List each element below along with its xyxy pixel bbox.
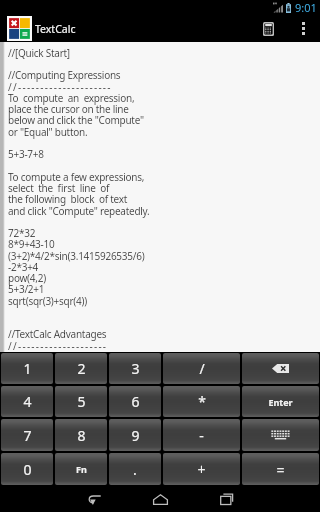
staticText: 1 [23,359,32,378]
button[interactable]: Enter [242,386,319,417]
staticText: select the first line of [8,183,110,194]
button[interactable]: = [242,453,319,485]
staticText: 8 [77,426,86,445]
button[interactable]: . [109,453,161,485]
staticText: To compute an expression, [8,93,135,104]
button[interactable]: 4 [1,386,53,417]
staticText: 5 [77,392,86,411]
staticText: the following block of text [8,194,128,205]
button[interactable]: 5 [55,386,107,417]
staticText: 5+3/2+1 [8,284,45,295]
staticText: = [276,460,285,479]
staticText: Enter [268,396,293,408]
staticText: -2*3+4 [8,262,39,273]
staticText: place the cursor on the line [8,104,129,115]
staticText: 72*32 [8,228,36,239]
button[interactable]: 8 [55,419,107,451]
staticText: TextCalc [35,22,76,36]
staticText: 7 [23,426,32,445]
button[interactable]: More options [290,15,316,42]
button[interactable]: + [163,453,240,485]
staticText: To compute a few expressions, [8,172,145,183]
staticText: below and click the "Compute" [8,115,144,126]
staticText: and click "Compute" repeatedly. [8,206,150,217]
button[interactable]: Recent apps [193,486,259,512]
staticText: * [198,392,206,411]
button[interactable]: 3 [109,353,161,384]
button[interactable]: 9 [109,419,161,451]
button[interactable]: 6 [109,386,161,417]
button[interactable]: Home [127,486,193,512]
staticText: pow(4,2) [8,273,46,284]
staticText: + [197,460,206,479]
staticText: . [133,460,137,479]
staticText: sqrt(sqr(3)+sqr(4)) [8,296,88,307]
staticText: 5+3-7+8 [8,149,44,160]
staticText: Fn [76,463,87,475]
staticText: - [199,426,204,445]
staticText: 9:01 [295,0,317,15]
staticText: 9 [131,426,140,445]
button[interactable]: Fn [55,453,107,485]
button[interactable]: 1 [1,353,53,384]
button[interactable]: Backspace [242,353,319,384]
button[interactable]: / [163,353,240,384]
button[interactable]: 7 [1,419,53,451]
button[interactable]: Calculator [247,15,290,42]
button[interactable]: 0 [1,453,53,485]
button[interactable]: - [163,419,240,451]
staticText: //--------------------- [8,82,112,93]
staticText: //[Quick Start] [8,48,70,59]
button[interactable]: 2 [55,353,107,384]
staticText: (3+2)*4/2*sin(3.1415926535/6) [8,251,145,262]
staticText: 4 [23,392,32,411]
button[interactable]: Back [61,486,127,512]
staticText: //-------------------- [8,341,108,352]
staticText: / [199,359,205,378]
staticText: //TextCalc Advantages [8,329,107,340]
staticText: 6 [131,392,140,411]
staticText: 8*9+43-10 [8,239,55,250]
staticText: 3 [131,359,140,378]
button[interactable]: Show keyboard [242,419,319,451]
staticText: or "Equal" button. [8,127,88,138]
button[interactable]: * [163,386,240,417]
staticText: //Computing Expressions [8,70,121,81]
staticText: 2 [77,359,86,378]
staticText: 0 [23,460,32,479]
